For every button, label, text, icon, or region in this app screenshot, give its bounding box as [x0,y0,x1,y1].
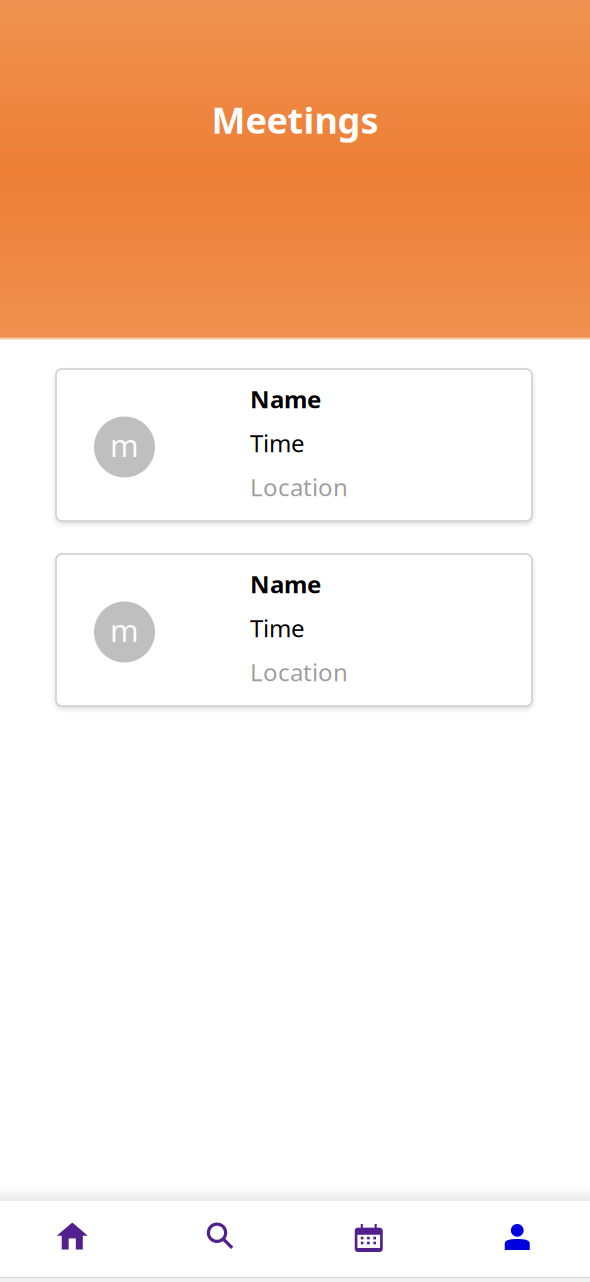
staticText: Time [250,427,305,459]
staticText: m [110,425,139,465]
staticText: Meetings [211,96,378,144]
button[interactable]: m [56,369,532,521]
button[interactable]: Calendar [295,1201,442,1277]
button[interactable]: Profile [442,1201,590,1277]
staticText: Location [250,656,348,688]
staticText: Name [250,383,321,415]
staticText: Location [250,471,348,503]
button[interactable]: Home [0,1201,147,1277]
button[interactable]: Search [147,1201,295,1277]
staticText: Name [250,568,321,600]
staticText: m [110,610,139,650]
button[interactable]: m [56,554,532,706]
staticText: Time [250,612,305,644]
